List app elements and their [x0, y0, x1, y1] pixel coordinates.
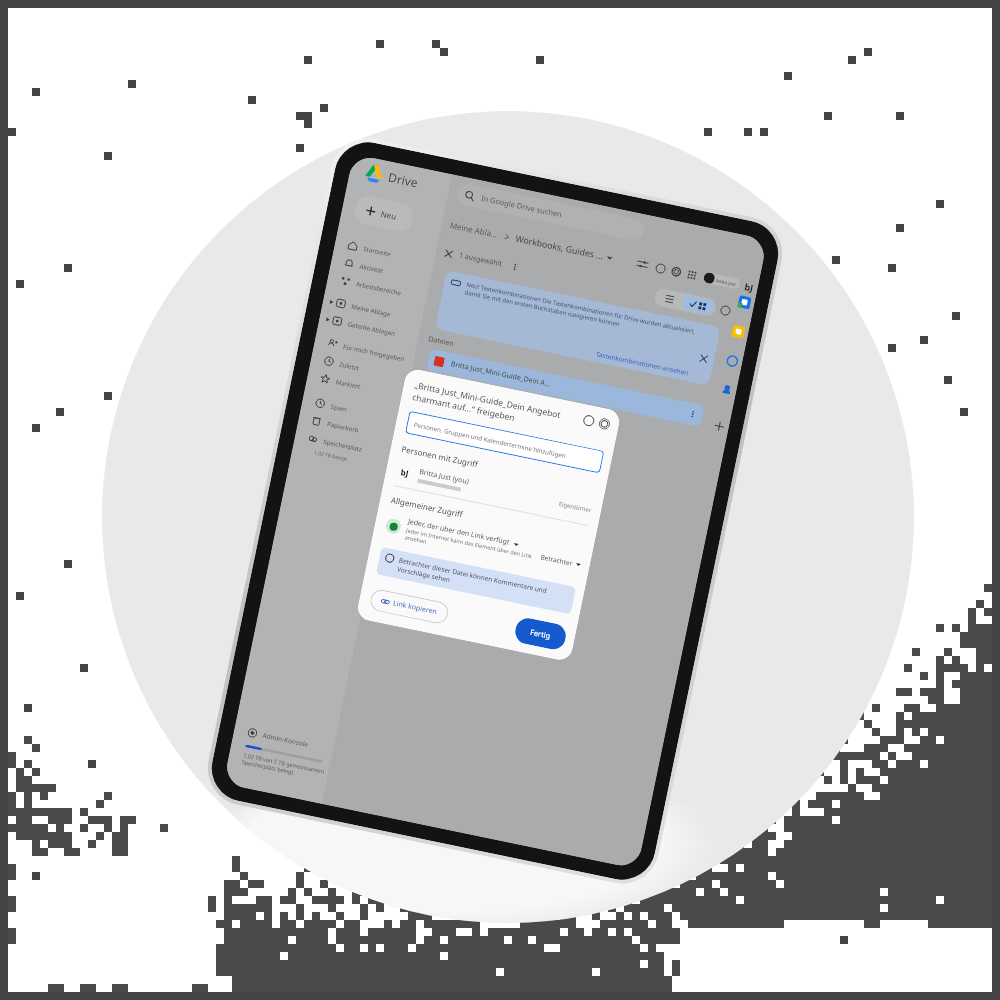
button[interactable]: Hilfe [655, 263, 666, 274]
staticText: Jeder, der über den Link verfügt [407, 517, 511, 548]
staticText: Fertig [529, 627, 552, 641]
staticText: Markiert [335, 377, 361, 390]
button[interactable]: Markiert [306, 366, 408, 404]
button[interactable]: Einstellungen [598, 417, 611, 430]
button[interactable]: Tastenkombinationen ansehen [595, 349, 690, 377]
button[interactable]: Hinzufügen [713, 420, 726, 433]
staticText: Dateien [427, 334, 455, 349]
button[interactable]: Kontakte [720, 383, 733, 396]
staticText: Geteilte Ablagen [347, 319, 397, 337]
staticText: Spam [330, 402, 348, 413]
button[interactable]: Papierkorb [297, 408, 400, 447]
staticText: Neu [380, 208, 398, 222]
staticText: Drive [387, 169, 420, 190]
button[interactable]: Meine Abla... [449, 219, 499, 240]
button[interactable]: App [737, 295, 752, 309]
button[interactable]: Admin-Konsole [247, 728, 310, 749]
button[interactable]: Meine Ablage [321, 291, 424, 329]
staticText: betta just [716, 277, 737, 287]
button[interactable]: Filter [636, 258, 649, 271]
button[interactable]: In Google Drive suchen [454, 182, 646, 242]
staticText: Eigentümer [558, 500, 593, 515]
staticText: Jeder im Internet kann das Element über … [404, 526, 541, 568]
staticText: Für mich freigegeben [342, 342, 406, 362]
button[interactable]: Link kopieren [368, 588, 450, 625]
button[interactable]: Fertig [513, 616, 568, 652]
staticText: Link kopieren [392, 598, 438, 617]
staticText: Arbeitsbereiche [355, 279, 402, 296]
staticText: Meine Ablage [351, 302, 392, 318]
button[interactable]: Einstellungen [670, 266, 682, 278]
staticText: Britta Just (you) [418, 467, 470, 487]
staticText: Betrachter [540, 552, 574, 568]
button[interactable]: Personen, Gruppen und Kalendertermine hi… [405, 411, 604, 473]
button[interactable]: Optionen [688, 409, 697, 419]
staticText: damit Sie mit den ersten Buchstaben navi… [464, 288, 621, 328]
button[interactable]: Spam [301, 391, 403, 429]
button[interactable]: Schließen [698, 353, 709, 364]
staticText: Zuletzt [339, 359, 360, 371]
staticText: „Britta Just_Mini-Guide_Dein Angebot cha… [411, 379, 581, 437]
staticText: Speicherplatz [323, 437, 364, 453]
staticText: 1 ausgewählt [458, 250, 503, 269]
button[interactable]: Zuletzt [309, 349, 412, 387]
button[interactable]: Info [719, 305, 731, 316]
button[interactable]: Jeder, der über den Link verfügt [384, 512, 583, 576]
staticText: Personen mit Zugriff [401, 443, 479, 469]
button[interactable]: Britta Just_Mini-Guide_Dein A... [426, 349, 705, 427]
staticText: Papierkorb [326, 419, 360, 434]
staticText: Speicherplatz belegt [241, 758, 295, 776]
staticText: Workbooks, Guides ... [514, 233, 605, 263]
button[interactable]: Neu [353, 194, 415, 234]
button[interactable]: App [731, 324, 745, 339]
staticText: Admin-Konsole [262, 731, 310, 749]
button[interactable]: betta just [703, 272, 741, 290]
staticText: Neu! Tastenkombinationen Die Tastenkombi… [465, 281, 696, 336]
button[interactable]: Listenansicht [655, 289, 684, 308]
button[interactable]: Für mich freigegeben [313, 331, 416, 369]
staticText: 1,02 TB belegt [313, 449, 348, 463]
button[interactable]: Google Apps [686, 269, 698, 281]
button[interactable]: Auswahl aufheben [443, 248, 454, 259]
staticText: bJ [400, 466, 410, 479]
button[interactable]: Mehr [510, 262, 520, 272]
staticText: Betrachter dieser Datei können Kommentar… [396, 556, 569, 608]
staticText: bJ [744, 280, 755, 294]
button[interactable]: App [725, 354, 739, 368]
staticText: In Google Drive suchen [480, 193, 563, 219]
button[interactable]: Speicherplatz [293, 426, 396, 464]
staticText: Startseite [363, 244, 392, 257]
button[interactable]: Drive [363, 162, 420, 191]
staticText: 1,02 TB von 5 TB gemeinsamem [243, 751, 325, 775]
staticText: Aktivität [359, 262, 384, 274]
button[interactable]: Aktivität [330, 251, 432, 289]
button[interactable]: bJ [396, 462, 594, 518]
staticText: Personen, Gruppen und Kalendertermine hi… [413, 420, 568, 459]
button[interactable]: Startseite [333, 233, 436, 271]
staticText: Allgemeiner Zugriff [390, 494, 464, 519]
button[interactable]: Rasteransicht [681, 295, 715, 315]
button[interactable]: Geteilte Ablagen [318, 309, 420, 347]
button[interactable]: Arbeitsbereiche [326, 268, 429, 307]
staticText: Britta Just_Mini-Guide_Dein A... [450, 359, 552, 390]
button[interactable]: Hilfe [582, 414, 595, 427]
